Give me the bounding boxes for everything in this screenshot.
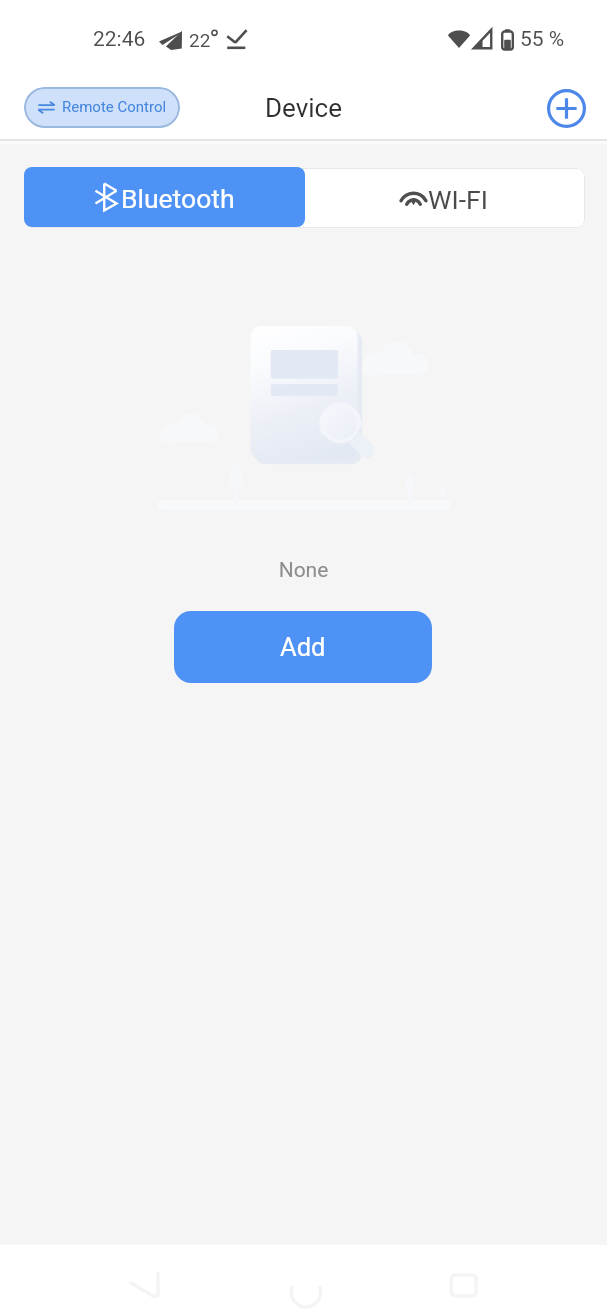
staticText: Add bbox=[280, 632, 326, 662]
button[interactable]: Recent apps bbox=[442, 1267, 490, 1315]
button[interactable]: Add bbox=[174, 611, 432, 683]
staticText: WI-FI bbox=[428, 184, 488, 215]
staticText: Bluetooth bbox=[121, 183, 235, 214]
button[interactable]: Bluetooth bbox=[24, 167, 305, 227]
staticText: 22:46 bbox=[93, 27, 146, 52]
button[interactable]: Remote Control bbox=[24, 87, 180, 128]
staticText: 55 % bbox=[520, 27, 565, 52]
button[interactable]: Add device bbox=[543, 85, 589, 131]
staticText: Device bbox=[265, 93, 342, 123]
button[interactable]: WI-FI bbox=[304, 168, 584, 228]
staticText: Remote Control bbox=[62, 98, 167, 116]
button[interactable]: Home bbox=[282, 1271, 330, 1316]
staticText: 22 bbox=[189, 29, 211, 51]
staticText: None bbox=[0, 558, 607, 583]
